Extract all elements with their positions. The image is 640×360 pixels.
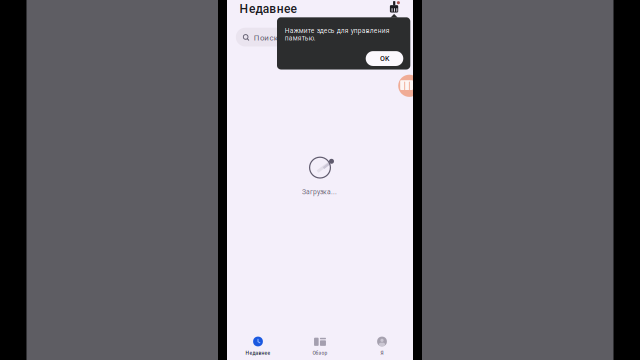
staticText: OK [380, 54, 389, 63]
button[interactable]: Поиск [236, 28, 404, 46]
button[interactable]: OK [366, 51, 403, 66]
staticText: Загрузка... [302, 188, 337, 196]
staticText: памятью. [285, 34, 316, 42]
button[interactable]: Управление памятью [386, 0, 402, 15]
staticText: Недавнее [240, 2, 296, 16]
staticText: Нажмите здесь для управления [285, 27, 390, 35]
button[interactable]: Я [351, 330, 413, 360]
staticText: Я [380, 350, 383, 356]
button[interactable]: Недавнее [227, 330, 289, 360]
staticText: Поиск [254, 33, 278, 42]
staticText: Обзор [312, 350, 327, 356]
button[interactable]: Обзор [289, 330, 351, 360]
staticText: Недавнее [245, 350, 270, 356]
